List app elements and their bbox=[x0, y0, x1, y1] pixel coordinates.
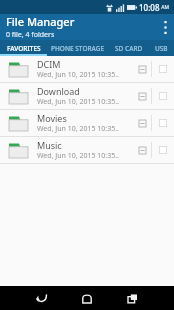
button[interactable]: Details bbox=[133, 60, 151, 78]
button[interactable]: Home bbox=[72, 286, 102, 310]
button[interactable]: FAVORITES bbox=[0, 40, 47, 56]
staticText: PHONE STORAGE bbox=[51, 44, 105, 53]
button[interactable]: SD CARD bbox=[109, 40, 149, 56]
button[interactable]: Movies bbox=[0, 110, 174, 137]
staticText: Wed, Jun 10, 2015 10:35.. bbox=[37, 97, 119, 107]
staticText: DCIM bbox=[37, 58, 61, 70]
button[interactable]: Back bbox=[26, 286, 56, 310]
button[interactable]: Recent apps bbox=[118, 286, 148, 310]
button[interactable]: Details bbox=[133, 141, 151, 159]
staticText: 10:08 bbox=[139, 2, 160, 13]
staticText: AM bbox=[160, 4, 170, 11]
staticText: 0 file, 4 folders bbox=[6, 30, 55, 40]
staticText: FAVORITES bbox=[7, 44, 41, 53]
button[interactable]: Details bbox=[133, 114, 151, 132]
button[interactable]: Details bbox=[133, 87, 151, 105]
staticText: USB bbox=[155, 44, 168, 53]
button[interactable]: Download bbox=[0, 83, 174, 110]
button[interactable]: Select Download bbox=[152, 83, 174, 109]
button[interactable]: Select Music bbox=[152, 137, 174, 163]
button[interactable]: Music bbox=[0, 137, 174, 164]
staticText: Wed, Jun 10, 2015 10:35.. bbox=[37, 151, 119, 161]
button[interactable]: Select DCIM bbox=[152, 56, 174, 82]
staticText: File Manager bbox=[6, 14, 75, 29]
button[interactable]: More options bbox=[156, 14, 174, 40]
button[interactable]: PHONE STORAGE bbox=[47, 40, 109, 56]
staticText: SD CARD bbox=[115, 44, 143, 53]
staticText: Download bbox=[37, 85, 80, 97]
staticText: Music bbox=[37, 139, 62, 151]
staticText: Movies bbox=[37, 112, 67, 124]
button[interactable]: DCIM bbox=[0, 56, 174, 83]
button[interactable]: Select Movies bbox=[152, 110, 174, 136]
staticText: Wed, Jun 10, 2015 10:35.. bbox=[37, 124, 119, 134]
button[interactable]: USB bbox=[149, 40, 174, 56]
staticText: Wed, Jun 10, 2015 10:35.. bbox=[37, 70, 119, 80]
